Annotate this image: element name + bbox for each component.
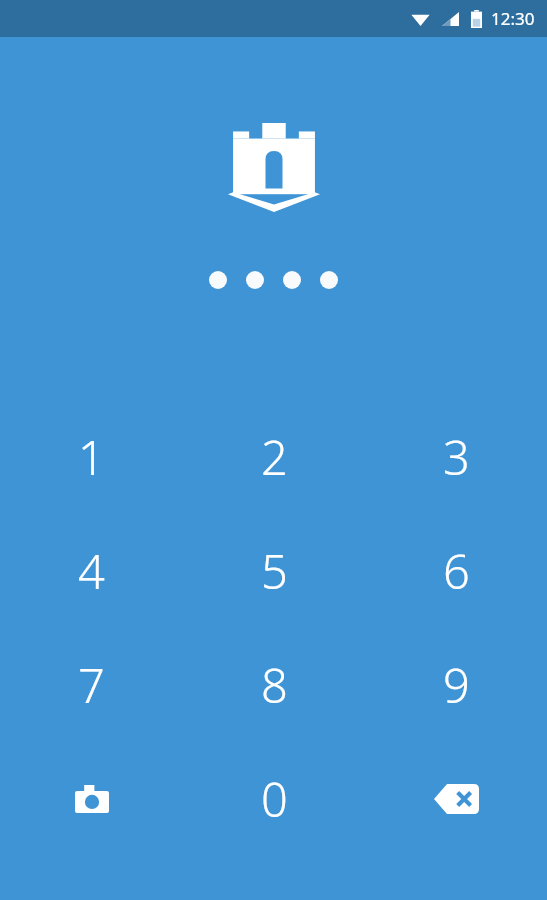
staticText: 5 — [261, 539, 288, 603]
staticText: 12:30 — [491, 7, 535, 30]
button[interactable]: Camera — [0, 742, 183, 856]
staticText: 3 — [443, 425, 470, 489]
button[interactable]: 6 — [365, 514, 547, 628]
button[interactable]: 5 — [183, 514, 365, 628]
button[interactable]: 7 — [0, 628, 183, 742]
button[interactable]: 3 — [365, 400, 547, 514]
staticText: 7 — [78, 653, 105, 717]
button[interactable]: 0 — [183, 742, 365, 856]
staticText: 1 — [78, 425, 105, 489]
button[interactable]: 1 — [0, 400, 183, 514]
staticText: 0 — [261, 767, 288, 831]
staticText: 2 — [261, 425, 288, 489]
staticText: 8 — [261, 653, 288, 717]
staticText: 6 — [443, 539, 470, 603]
button[interactable]: 4 — [0, 514, 183, 628]
button[interactable]: 2 — [183, 400, 365, 514]
staticText: 9 — [443, 653, 470, 717]
button[interactable]: Backspace — [365, 742, 547, 856]
staticText: 4 — [78, 539, 105, 603]
button[interactable]: 9 — [365, 628, 547, 742]
button[interactable]: 8 — [183, 628, 365, 742]
